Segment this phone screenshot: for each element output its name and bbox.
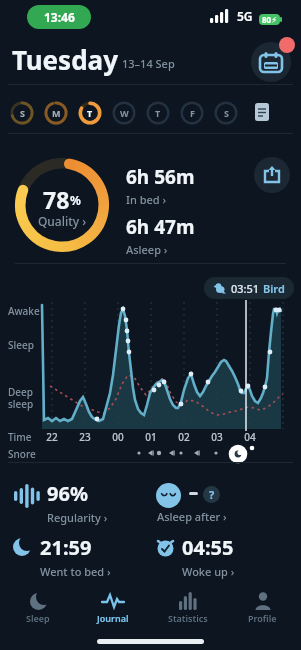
staticText: Time	[8, 430, 32, 444]
staticText: %	[70, 192, 81, 208]
staticText: 03:51	[231, 281, 260, 296]
staticText: 00	[111, 430, 125, 444]
button[interactable]: M	[44, 101, 68, 125]
button[interactable]: 13:46	[27, 5, 91, 29]
staticText: Sleep	[26, 612, 50, 624]
staticText: 13–14 Sep	[122, 56, 175, 71]
staticText: Asleep ›	[126, 242, 168, 257]
staticText: 5G	[237, 8, 253, 24]
button[interactable]: S	[10, 101, 34, 125]
button[interactable]: ?	[203, 486, 220, 503]
staticText: Went to bed ›	[40, 564, 111, 579]
button[interactable]: Journal	[75, 590, 150, 624]
staticText: 04:55	[182, 534, 234, 561]
button[interactable]: Profile	[225, 590, 300, 624]
staticText: Sleep	[8, 338, 34, 352]
staticText: S	[20, 107, 25, 119]
staticText: T	[87, 107, 93, 119]
staticText: Deep	[8, 385, 33, 399]
button[interactable]	[254, 157, 290, 193]
staticText: 01	[144, 430, 158, 444]
button[interactable]: 96%	[47, 480, 108, 525]
staticText: S	[224, 107, 229, 119]
button[interactable]: 04:55	[182, 534, 235, 579]
staticText: Bird	[263, 281, 285, 296]
staticText: 21:59	[40, 534, 92, 561]
staticText: W	[120, 107, 129, 119]
button[interactable]: 03:51	[213, 277, 285, 299]
button[interactable]: F	[180, 101, 204, 125]
button[interactable]: Asleep after ›	[157, 509, 227, 524]
button[interactable]: Statistics	[150, 590, 225, 624]
button[interactable]	[251, 42, 291, 82]
staticText: 6h 56m	[126, 164, 195, 190]
staticText: M	[52, 107, 61, 119]
staticText: Journal	[97, 612, 129, 624]
staticText: Regularity ›	[47, 510, 108, 525]
staticText: F	[190, 107, 195, 119]
button[interactable]	[254, 103, 270, 123]
button[interactable]: W	[112, 101, 136, 125]
staticText: 02	[177, 430, 191, 444]
staticText: 80⚡	[262, 14, 277, 25]
button[interactable]: 6h 56m	[126, 164, 195, 257]
staticText: ?	[209, 487, 215, 502]
button[interactable]: T	[78, 101, 102, 125]
staticText: Awake	[8, 304, 40, 318]
staticText: Snore	[8, 447, 36, 461]
staticText: Woke up ›	[182, 564, 235, 579]
button[interactable]: S	[214, 101, 238, 125]
button[interactable]: Sleep	[0, 590, 75, 624]
staticText: T	[155, 107, 161, 119]
staticText: 03	[210, 430, 224, 444]
button[interactable]: T	[146, 101, 170, 125]
staticText: sleep	[8, 397, 34, 411]
staticText: Statistics	[168, 612, 208, 624]
button[interactable]: Quality ›	[15, 213, 109, 229]
staticText: 23	[78, 430, 92, 444]
staticText: In bed ›	[126, 192, 167, 207]
staticText: Tuesday	[12, 42, 119, 77]
staticText: 04	[243, 430, 257, 444]
staticText: 78	[43, 184, 70, 215]
staticText: 96%	[47, 480, 88, 507]
staticText: 22	[45, 430, 59, 444]
staticText: 13:46	[44, 9, 75, 25]
staticText: Profile	[248, 612, 277, 624]
staticText: 6h 47m	[126, 214, 195, 240]
button[interactable]: 21:59	[40, 534, 111, 579]
